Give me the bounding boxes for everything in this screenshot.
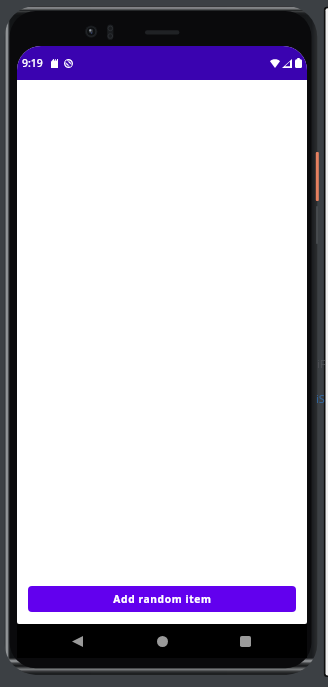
staticText: Add random item (113, 592, 212, 606)
staticText: iS (316, 391, 325, 406)
button[interactable]: Add random item (28, 586, 296, 612)
staticText: iF (317, 356, 326, 371)
button[interactable]: Home (147, 626, 177, 656)
staticText: 9:19 (22, 56, 43, 70)
button[interactable]: Recent apps (230, 626, 260, 656)
button[interactable]: Back (62, 626, 92, 656)
